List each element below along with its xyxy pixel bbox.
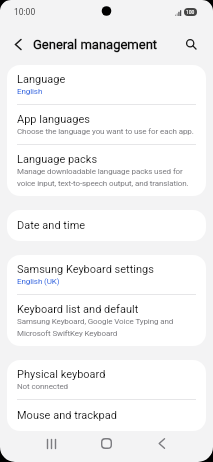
staticText: English [17, 87, 43, 96]
staticText: English (UK) [17, 277, 60, 286]
staticText: App languages [17, 113, 90, 126]
button[interactable]: Mouse and trackpad [7, 400, 206, 431]
button[interactable]: Keyboard list and default [7, 295, 206, 346]
staticText: Physical keyboard [17, 368, 106, 381]
button[interactable]: Samsung Keyboard settings [7, 255, 206, 294]
staticText: Mouse and trackpad [17, 409, 117, 422]
button[interactable] [181, 34, 201, 54]
staticText: Keyboard list and default [17, 303, 139, 316]
staticText: Date and time [17, 219, 86, 232]
staticText: Language packs [17, 153, 98, 166]
button[interactable]: Language packs [7, 145, 206, 196]
button[interactable] [79, 433, 134, 454]
staticText: Choose the language you want to use for … [17, 127, 194, 136]
button[interactable] [24, 433, 79, 454]
staticText: Samsung Keyboard, Google Voice Typing an… [17, 317, 174, 338]
button[interactable]: Language [7, 65, 206, 104]
button[interactable] [134, 433, 189, 454]
button[interactable]: App languages [7, 105, 206, 144]
button[interactable] [8, 34, 28, 54]
staticText: Not connected [17, 382, 68, 391]
staticText: General management [33, 37, 158, 52]
staticText: Samsung Keyboard settings [17, 263, 154, 276]
button[interactable]: Physical keyboard [7, 360, 206, 399]
staticText: Language [17, 73, 66, 86]
staticText: Manage downloadable language packs used … [17, 167, 189, 188]
button[interactable]: Date and time [7, 210, 206, 241]
staticText: 10:00 [14, 7, 36, 17]
staticText: 100 [186, 9, 195, 15]
